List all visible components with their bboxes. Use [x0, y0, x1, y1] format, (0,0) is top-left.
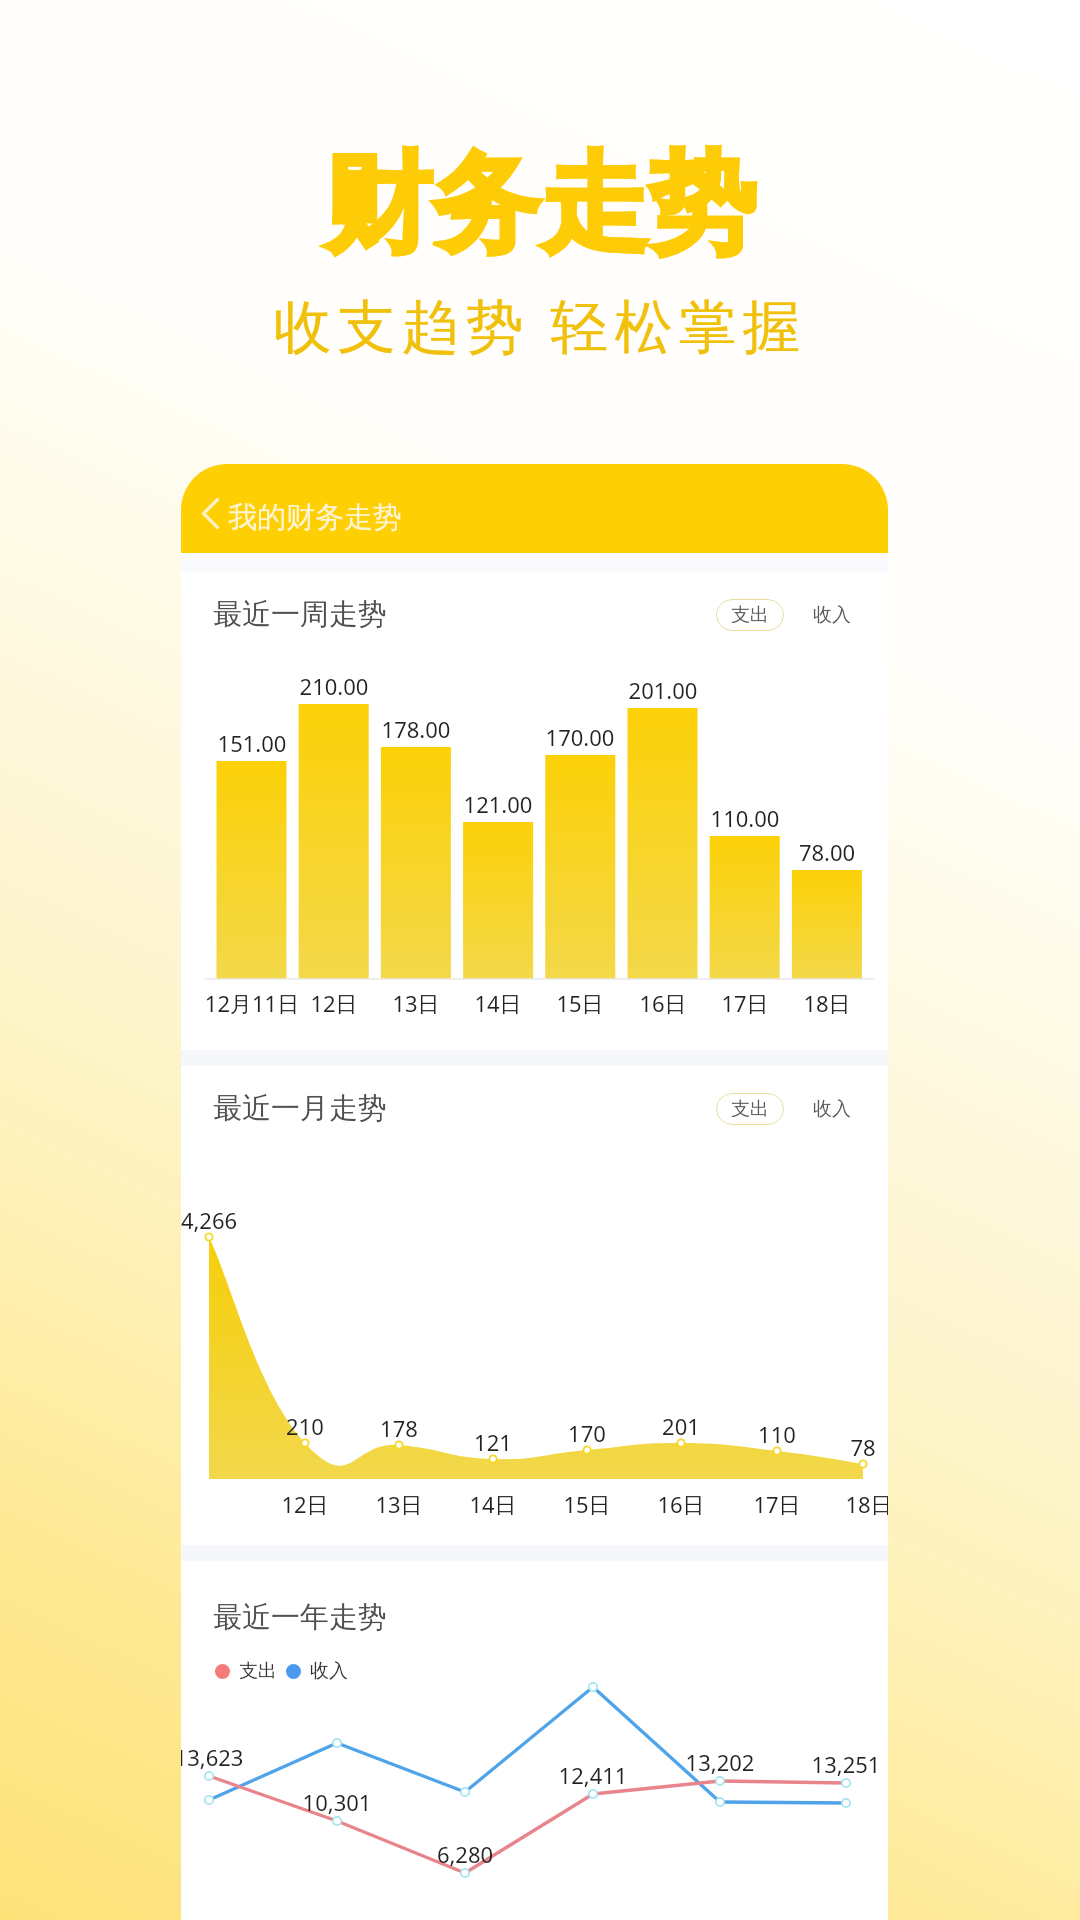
button[interactable]: 支出: [716, 1093, 784, 1125]
staticText: 178: [349, 1413, 449, 1443]
staticText: 18日: [819, 1489, 888, 1519]
staticText: 收入: [310, 1659, 348, 1683]
staticText: 13,623: [181, 1742, 259, 1772]
staticText: 最近一月走势: [213, 1090, 387, 1127]
staticText: 13日: [361, 988, 471, 1018]
staticText: 12日: [255, 1489, 355, 1519]
staticText: 121: [443, 1427, 543, 1457]
button[interactable]: 支出: [716, 599, 784, 631]
staticText: 15日: [525, 988, 635, 1018]
staticText: 12日: [279, 988, 389, 1018]
staticText: 13日: [349, 1489, 449, 1519]
staticText: 收入: [813, 603, 851, 627]
staticText: 201: [631, 1411, 731, 1441]
staticText: 支出: [239, 1659, 277, 1683]
staticText: 13,202: [670, 1747, 770, 1777]
staticText: 支出: [731, 603, 769, 627]
staticText: 收入: [813, 1097, 851, 1121]
staticText: 18日: [772, 988, 882, 1018]
staticText: 收支趋势 轻松掌握: [0, 285, 1080, 364]
staticText: 210: [255, 1411, 355, 1441]
staticText: 最近一周走势: [213, 596, 387, 633]
staticText: 10,301: [287, 1787, 387, 1817]
staticText: 78: [813, 1432, 888, 1462]
staticText: 17日: [727, 1489, 827, 1519]
staticText: 78.00: [777, 837, 877, 867]
staticText: 178.00: [366, 714, 466, 744]
staticText: 支出: [731, 1097, 769, 1121]
staticText: 151.00: [202, 728, 302, 758]
staticText: 170: [537, 1418, 637, 1448]
staticText: 15日: [537, 1489, 637, 1519]
staticText: 财务走势: [0, 137, 1080, 273]
staticText: 我的财务走势: [228, 499, 402, 536]
staticText: 最近一年走势: [213, 1599, 387, 1636]
staticText: 121.00: [448, 789, 548, 819]
staticText: 4,266: [181, 1205, 259, 1235]
staticText: 210.00: [284, 671, 384, 701]
staticText: 110: [727, 1419, 827, 1449]
staticText: 16日: [608, 988, 718, 1018]
staticText: 110.00: [695, 803, 795, 833]
staticText: 14日: [443, 1489, 543, 1519]
staticText: 170.00: [530, 722, 630, 752]
staticText: 6,280: [415, 1839, 515, 1869]
button[interactable]: Back: [195, 495, 225, 531]
staticText: 201.00: [613, 675, 713, 705]
button[interactable]: 收入: [805, 1093, 858, 1125]
button[interactable]: 收入: [805, 599, 858, 631]
staticText: 12,411: [543, 1760, 643, 1790]
staticText: 16日: [631, 1489, 731, 1519]
staticText: 12月11日: [197, 988, 307, 1018]
staticText: 17日: [690, 988, 800, 1018]
staticText: 13,251: [796, 1749, 888, 1779]
staticText: 14日: [443, 988, 553, 1018]
